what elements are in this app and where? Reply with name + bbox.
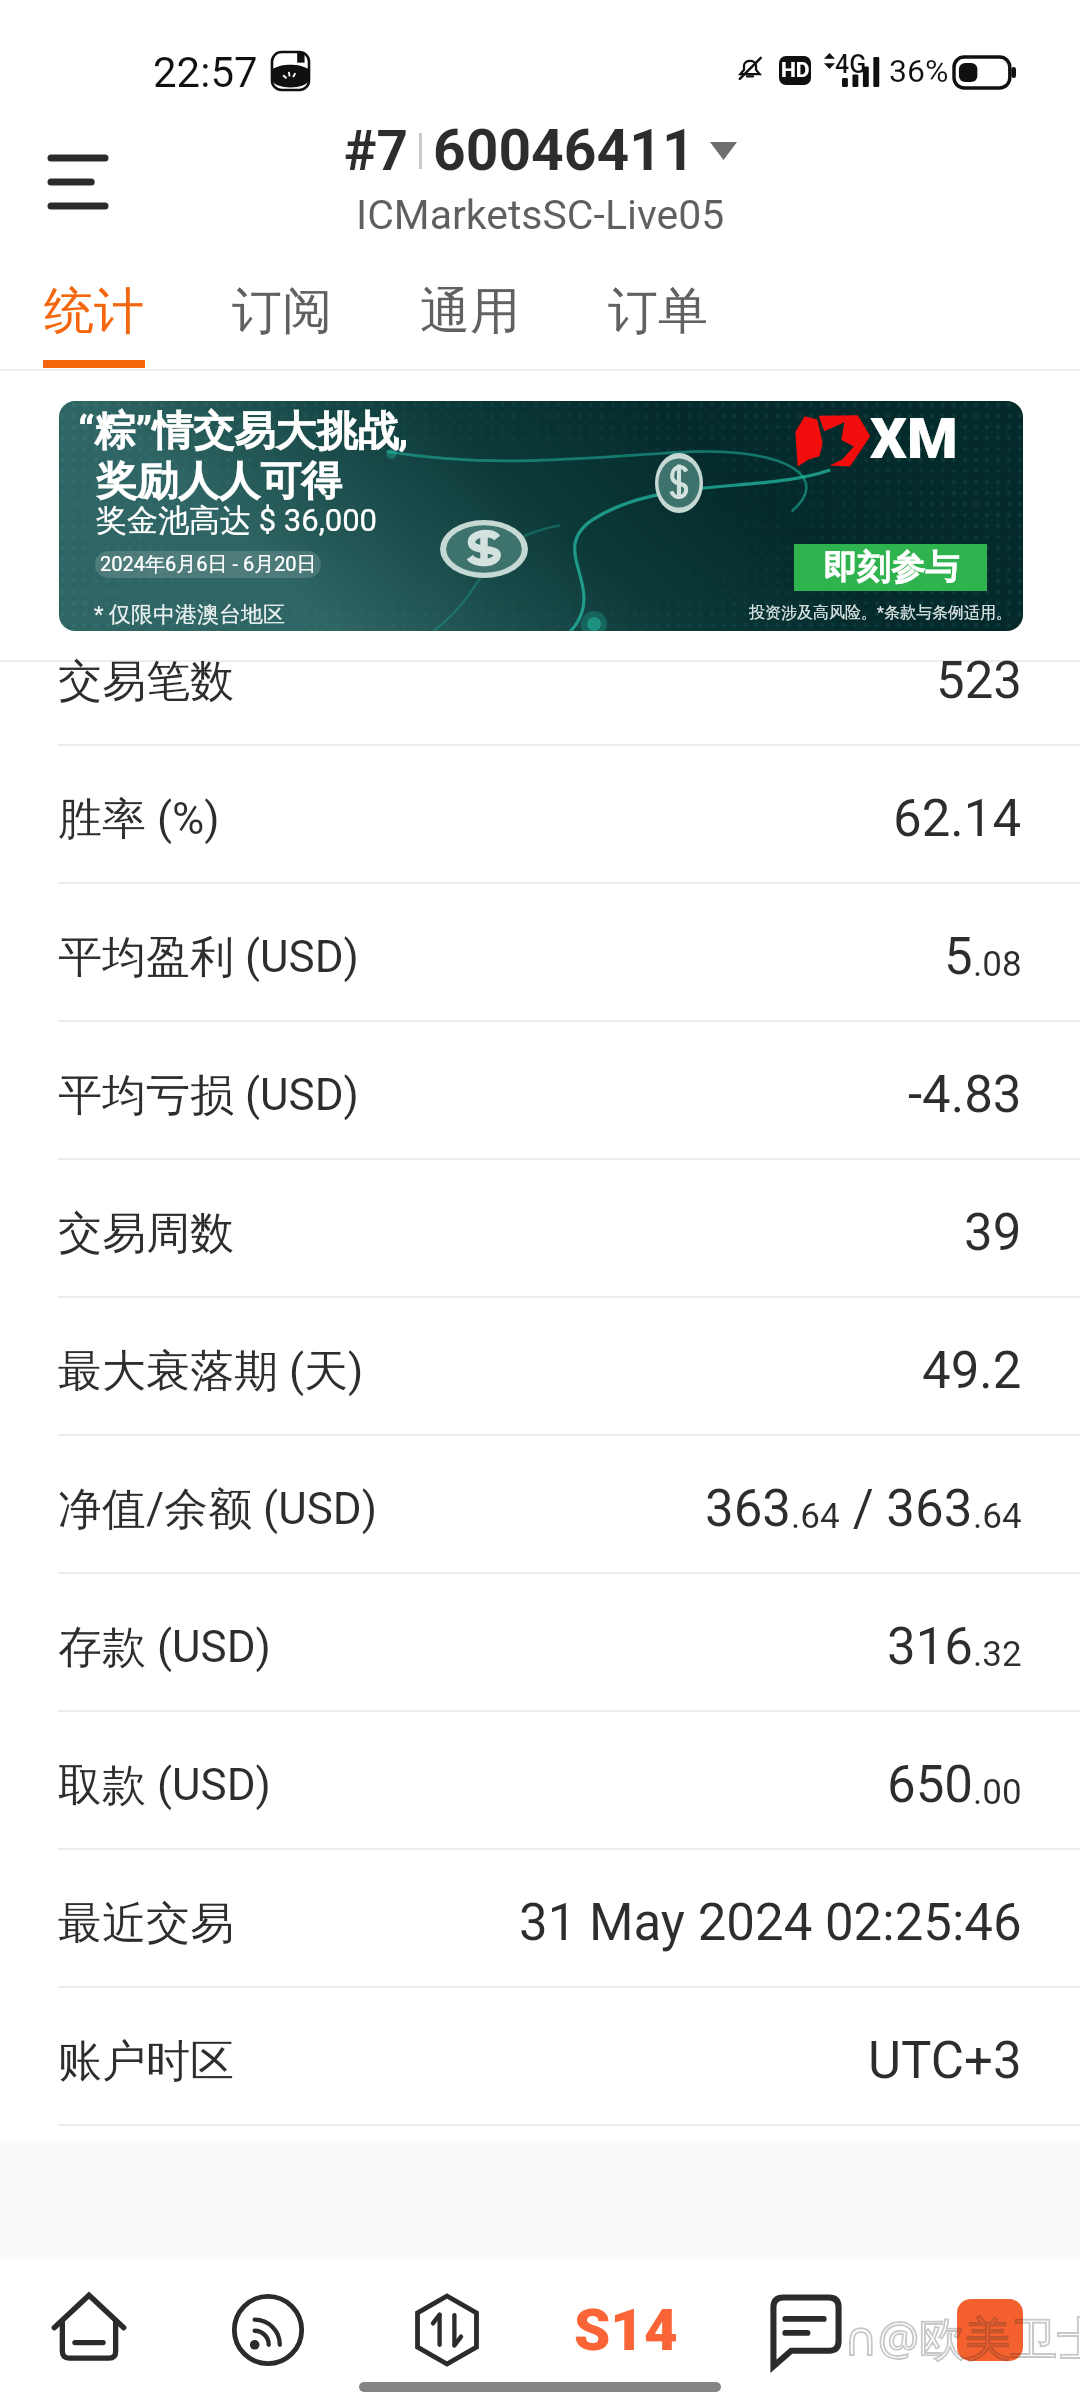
button[interactable]: 存款 (USD): [0, 1578, 1080, 1716]
staticText: 订单: [608, 280, 708, 343]
staticText: .32: [973, 1634, 1022, 1675]
staticText: 交易周数: [58, 1206, 234, 1261]
staticText: HD: [781, 58, 810, 83]
staticText: “粽”情交易大挑战,: [78, 406, 409, 458]
button[interactable]: 净值/余额 (USD): [0, 1440, 1080, 1578]
staticText: 订阅: [232, 280, 332, 343]
staticText: 316: [887, 1617, 973, 1677]
button[interactable]: 平均亏损 (USD): [0, 1026, 1080, 1164]
staticText: 平均亏损 (USD): [58, 1068, 359, 1123]
button[interactable]: 统计: [0, 270, 188, 370]
staticText: 即刻参与: [823, 546, 959, 589]
staticText: .64: [973, 1496, 1022, 1537]
staticText: .64: [791, 1496, 840, 1537]
staticText: .08: [973, 944, 1022, 985]
staticText: XM: [870, 407, 958, 471]
staticText: 净值/余额 (USD): [58, 1482, 377, 1537]
staticText: 统计: [44, 280, 144, 343]
staticText: 62.14: [893, 789, 1022, 849]
button[interactable]: 最大衰落期 (天): [0, 1302, 1080, 1440]
staticText: ∩@欧美卫士: [844, 2306, 1080, 2369]
button[interactable]: Menu: [30, 134, 126, 230]
button[interactable]: 交易笔数: [0, 612, 1080, 750]
button[interactable]: Profile: [915, 2282, 1065, 2378]
button[interactable]: 胜率 (%): [0, 750, 1080, 888]
staticText: 523: [936, 651, 1022, 711]
button[interactable]: 即刻参与: [794, 544, 987, 591]
staticText: 31 May 2024 02:25:46: [519, 1893, 1022, 1953]
staticText: UTC+3: [868, 2031, 1022, 2091]
staticText: 4G: [835, 50, 867, 79]
staticText: 奖金池高达 $ 36,000: [96, 501, 378, 540]
staticText: 奖励人人可得: [96, 456, 342, 508]
button[interactable]: S14: [551, 2282, 701, 2378]
staticText: 650: [887, 1755, 973, 1815]
staticText: 5: [944, 927, 973, 987]
staticText: -4.83: [908, 1065, 1022, 1125]
staticText: ICMarketsSC-Live05: [356, 191, 725, 239]
button[interactable]: 账户时区: [0, 1992, 1080, 2130]
staticText: 39: [964, 1203, 1022, 1263]
staticText: 363: [705, 1479, 791, 1539]
button[interactable]: 通用: [376, 270, 564, 370]
staticText: 2024年6月6日 - 6月20日: [100, 552, 317, 577]
button[interactable]: Home: [14, 2282, 164, 2378]
staticText: .00: [973, 1772, 1022, 1813]
button[interactable]: “粽”情交易大挑战,: [59, 401, 1023, 631]
button[interactable]: 交易周数: [0, 1164, 1080, 1302]
staticText: 最近交易: [58, 1896, 234, 1951]
staticText: 22:57: [153, 48, 258, 97]
button[interactable]: Trade: [372, 2282, 522, 2378]
staticText: 账户时区: [58, 2034, 234, 2089]
staticText: S14: [574, 2296, 678, 2364]
staticText: 60046411: [433, 117, 695, 184]
staticText: 交易笔数: [58, 654, 234, 709]
button[interactable]: 订单: [564, 270, 752, 370]
button[interactable]: Chat: [731, 2282, 881, 2378]
staticText: 胜率 (%): [58, 792, 220, 847]
button[interactable]: 取款 (USD): [0, 1716, 1080, 1854]
staticText: * 仅限中港澳台地区: [94, 601, 285, 629]
staticText: 通用: [420, 280, 520, 343]
staticText: 取款 (USD): [58, 1758, 271, 1813]
staticText: 存款 (USD): [58, 1620, 271, 1675]
staticText: / 363: [840, 1479, 973, 1539]
button[interactable]: Signals: [193, 2282, 343, 2378]
staticText: 平均盈利 (USD): [58, 930, 359, 985]
staticText: 投资涉及高风险。*条款与条例适用。: [749, 603, 1012, 623]
button[interactable]: 平均盈利 (USD): [0, 888, 1080, 1026]
staticText: 36%: [889, 52, 949, 90]
staticText: 最大衰落期 (天): [58, 1344, 364, 1399]
staticText: #7: [344, 119, 409, 183]
staticText: 49.2: [922, 1341, 1022, 1401]
button[interactable]: 订阅: [188, 270, 376, 370]
button[interactable]: 最近交易: [0, 1854, 1080, 1992]
button[interactable]: #7: [290, 117, 790, 252]
